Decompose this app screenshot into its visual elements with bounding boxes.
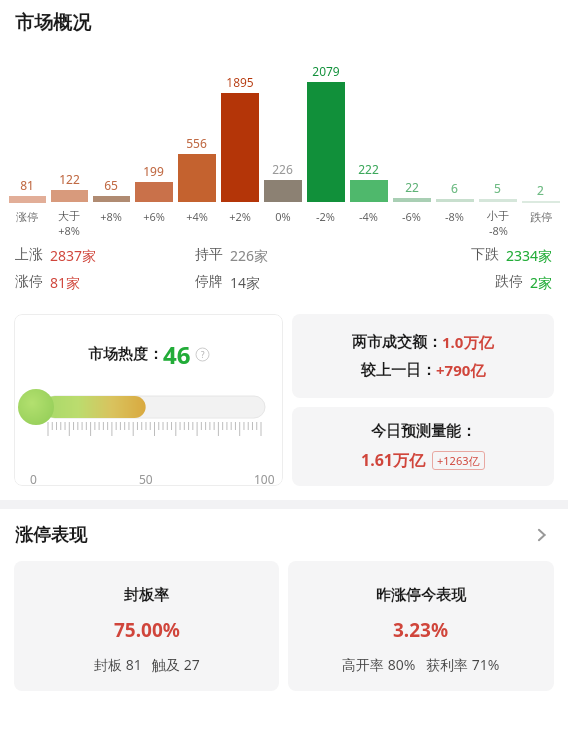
staticText: +8% xyxy=(100,209,122,224)
staticText: 2家 xyxy=(530,273,553,292)
staticText: 较上一日： xyxy=(361,361,436,380)
staticText: 跌停 xyxy=(530,210,552,224)
staticText: 两市成交额： xyxy=(352,333,442,352)
staticText: 0 xyxy=(30,471,37,486)
staticText: 停牌 xyxy=(195,273,223,291)
staticText: 市场热度： xyxy=(88,345,163,364)
staticText: 触及 27 xyxy=(152,655,200,674)
staticText: 50 xyxy=(139,471,153,486)
staticText: 1.0万亿 xyxy=(442,332,494,352)
button[interactable]: 昨涨停今表现 xyxy=(288,561,554,691)
staticText: -2% xyxy=(316,209,335,224)
staticText: 跌停 xyxy=(495,273,523,291)
staticText: 2 xyxy=(537,182,544,198)
staticText: 122 xyxy=(59,171,80,187)
staticText: 46 xyxy=(163,338,191,371)
staticText: 封板率 xyxy=(124,586,169,605)
staticText: 22 xyxy=(405,179,419,195)
staticText: 高开率 80% xyxy=(342,655,416,674)
staticText: -8% xyxy=(489,223,508,238)
staticText: 昨涨停今表现 xyxy=(376,586,466,605)
staticText: 226家 xyxy=(230,246,269,265)
staticText: 556 xyxy=(186,135,207,151)
staticText: 封板 81 xyxy=(94,655,142,674)
staticText: ? xyxy=(201,349,205,360)
staticText: 75.00% xyxy=(114,617,180,643)
button[interactable]: 两市成交额： xyxy=(292,314,554,398)
staticText: 1895 xyxy=(226,74,254,90)
staticText: 2079 xyxy=(312,63,340,79)
staticText: +8% xyxy=(58,223,80,238)
staticText: 0% xyxy=(275,209,291,224)
staticText: 222 xyxy=(358,161,379,177)
staticText: 14家 xyxy=(230,273,261,292)
staticText: 获利率 71% xyxy=(426,655,500,674)
button[interactable]: Help xyxy=(196,348,209,361)
button[interactable]: 封板率 xyxy=(14,561,279,691)
staticText: 涨停表现 xyxy=(15,524,87,547)
button[interactable]: 涨停表现 xyxy=(0,509,568,561)
staticText: 今日预测量能： xyxy=(371,422,476,441)
other: More xyxy=(533,525,553,545)
staticText: -4% xyxy=(359,209,378,224)
staticText: 上涨 xyxy=(15,246,43,264)
staticText: 100 xyxy=(254,471,275,486)
button[interactable]: 今日预测量能： xyxy=(292,407,554,486)
staticText: 下跌 xyxy=(471,246,499,264)
staticText: 涨停 xyxy=(15,273,43,291)
staticText: 5 xyxy=(494,180,501,196)
staticText: 涨停 xyxy=(16,210,38,224)
staticText: +1263亿 xyxy=(437,453,480,468)
staticText: 81家 xyxy=(50,273,81,292)
button[interactable]: 市场热度： xyxy=(14,314,283,486)
staticText: 持平 xyxy=(195,246,223,264)
staticText: 3.23% xyxy=(393,617,449,643)
staticText: 2837家 xyxy=(50,246,97,265)
staticText: +2% xyxy=(229,209,251,224)
staticText: 2334家 xyxy=(506,246,553,265)
staticText: 65 xyxy=(104,177,118,193)
staticText: 大于 xyxy=(58,209,80,223)
staticText: -8% xyxy=(445,209,464,224)
staticText: +6% xyxy=(143,209,165,224)
staticText: 1.61万亿 xyxy=(361,449,425,471)
staticText: 81 xyxy=(20,177,34,193)
staticText: 市场概况 xyxy=(15,11,91,35)
staticText: -6% xyxy=(402,209,421,224)
staticText: 小于 xyxy=(487,209,509,223)
staticText: 226 xyxy=(272,161,293,177)
staticText: +4% xyxy=(186,209,208,224)
staticText: 199 xyxy=(143,163,164,179)
staticText: 6 xyxy=(451,180,458,196)
staticText: +790亿 xyxy=(436,360,486,380)
